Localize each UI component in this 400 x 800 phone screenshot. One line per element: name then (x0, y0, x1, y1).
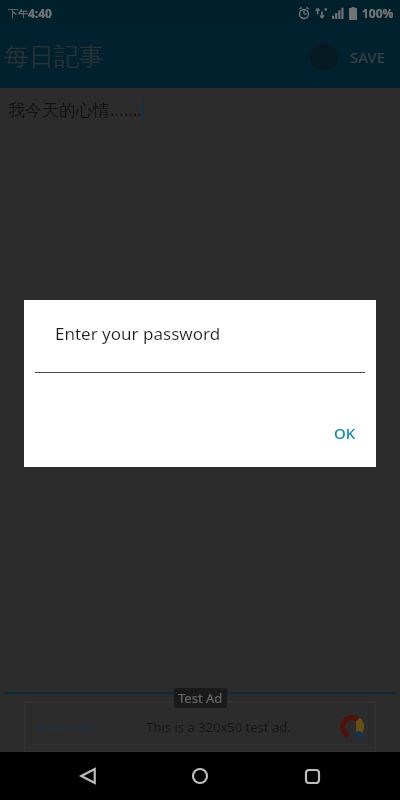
button[interactable]: Home (176, 752, 224, 800)
staticText: 我今天的心情....... (8, 98, 142, 121)
button[interactable]: SAVE (336, 35, 400, 79)
staticText: This is a 320x50 test ad. (98, 718, 339, 736)
staticText: OK (334, 423, 356, 443)
button[interactable]: Back (64, 752, 112, 800)
button[interactable]: Nice job! (25, 702, 375, 752)
staticText: Test Ad (178, 689, 223, 707)
staticText: 下午 (8, 7, 28, 20)
staticText: SAVE (350, 47, 386, 67)
button[interactable]: OK (314, 411, 376, 455)
button[interactable]: Recents (288, 752, 336, 800)
staticText: 每日記事 (4, 41, 104, 72)
staticText: Nice job! (37, 718, 90, 736)
staticText: Enter your password (55, 322, 221, 345)
staticText: 4:40 (28, 5, 52, 21)
staticText: 100% (362, 5, 394, 21)
